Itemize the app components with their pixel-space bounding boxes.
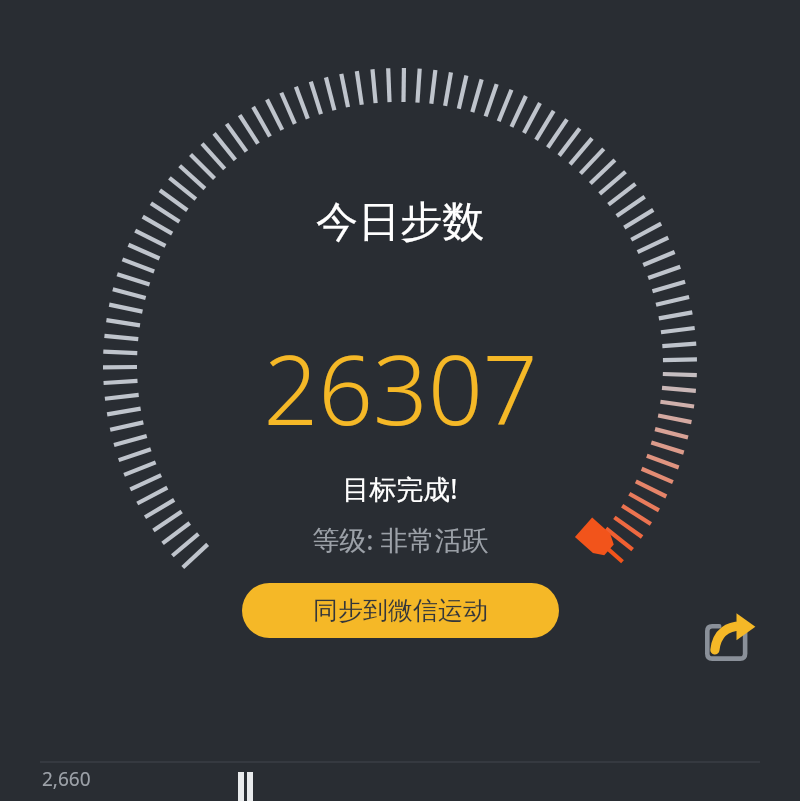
- staticText: 目标完成!: [342, 470, 458, 507]
- staticText: 26307: [263, 322, 538, 453]
- staticText: 同步到微信运动: [313, 595, 488, 626]
- staticText: 等级: 非常活跃: [312, 521, 489, 558]
- staticText: 2,660: [42, 766, 91, 792]
- button[interactable]: 同步到微信运动: [242, 583, 559, 638]
- button[interactable]: Share: [703, 610, 757, 664]
- staticText: 今日步数: [316, 196, 484, 249]
